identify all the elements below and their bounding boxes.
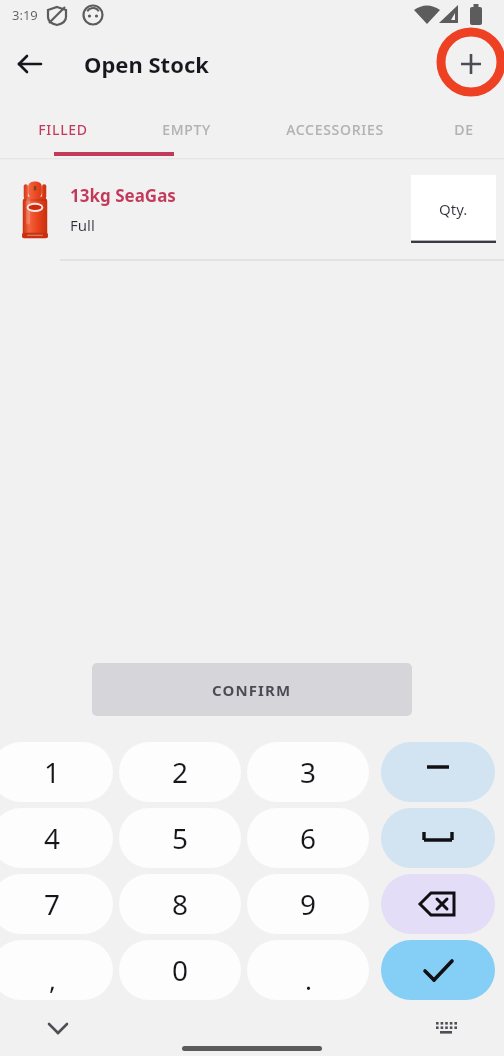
- button[interactable]: 9: [247, 874, 369, 934]
- staticText: .: [305, 962, 312, 997]
- button[interactable]: CONFIRM: [92, 663, 412, 716]
- staticText: 3: [300, 753, 317, 791]
- staticText: ,: [49, 962, 56, 997]
- staticText: Full: [70, 215, 95, 235]
- staticText: Qty.: [439, 199, 468, 219]
- button[interactable]: 6: [247, 808, 369, 868]
- staticText: 7: [44, 885, 61, 923]
- staticText: 0: [172, 951, 189, 989]
- button[interactable]: 8: [119, 874, 241, 934]
- button[interactable]: EMPTY: [126, 98, 246, 160]
- staticText: 5: [172, 819, 189, 857]
- staticText: 13kg SeaGas: [70, 184, 176, 207]
- button[interactable]: Hide keyboard: [36, 1006, 80, 1050]
- button[interactable]: 0: [119, 940, 241, 1000]
- staticText: 9: [300, 885, 317, 923]
- staticText: 3:19: [12, 6, 38, 24]
- staticText: ACCESSORIES: [286, 120, 384, 139]
- button[interactable]: Space: [381, 808, 495, 868]
- button[interactable]: 7: [0, 874, 113, 934]
- staticText: DE: [454, 120, 474, 139]
- button[interactable]: .: [247, 940, 369, 1000]
- staticText: Open Stock: [84, 49, 209, 79]
- button[interactable]: FILLED: [0, 98, 126, 160]
- button[interactable]: 3: [247, 742, 369, 802]
- staticText: EMPTY: [162, 120, 211, 139]
- button[interactable]: 4: [0, 808, 113, 868]
- button[interactable]: 2: [119, 742, 241, 802]
- button[interactable]: ACCESSORIES: [246, 98, 424, 160]
- button[interactable]: Enter: [381, 940, 495, 1000]
- button[interactable]: Back: [6, 40, 54, 88]
- button[interactable]: 13kg SeaGas: [0, 168, 504, 250]
- staticText: 6: [300, 819, 317, 857]
- staticText: FILLED: [38, 120, 88, 139]
- staticText: 1: [44, 753, 61, 791]
- button[interactable]: Add: [447, 40, 495, 88]
- button[interactable]: Switch keyboard: [424, 1006, 468, 1050]
- staticText: 4: [44, 819, 61, 857]
- button[interactable]: Qty.: [411, 175, 496, 243]
- button[interactable]: 5: [119, 808, 241, 868]
- button[interactable]: DE: [424, 98, 504, 160]
- button[interactable]: ,: [0, 940, 113, 1000]
- staticText: 2: [172, 753, 189, 791]
- staticText: 8: [172, 885, 189, 923]
- button[interactable]: 1: [0, 742, 113, 802]
- staticText: CONFIRM: [212, 680, 292, 700]
- button[interactable]: Backspace: [381, 874, 495, 934]
- button[interactable]: Minus: [381, 742, 495, 802]
